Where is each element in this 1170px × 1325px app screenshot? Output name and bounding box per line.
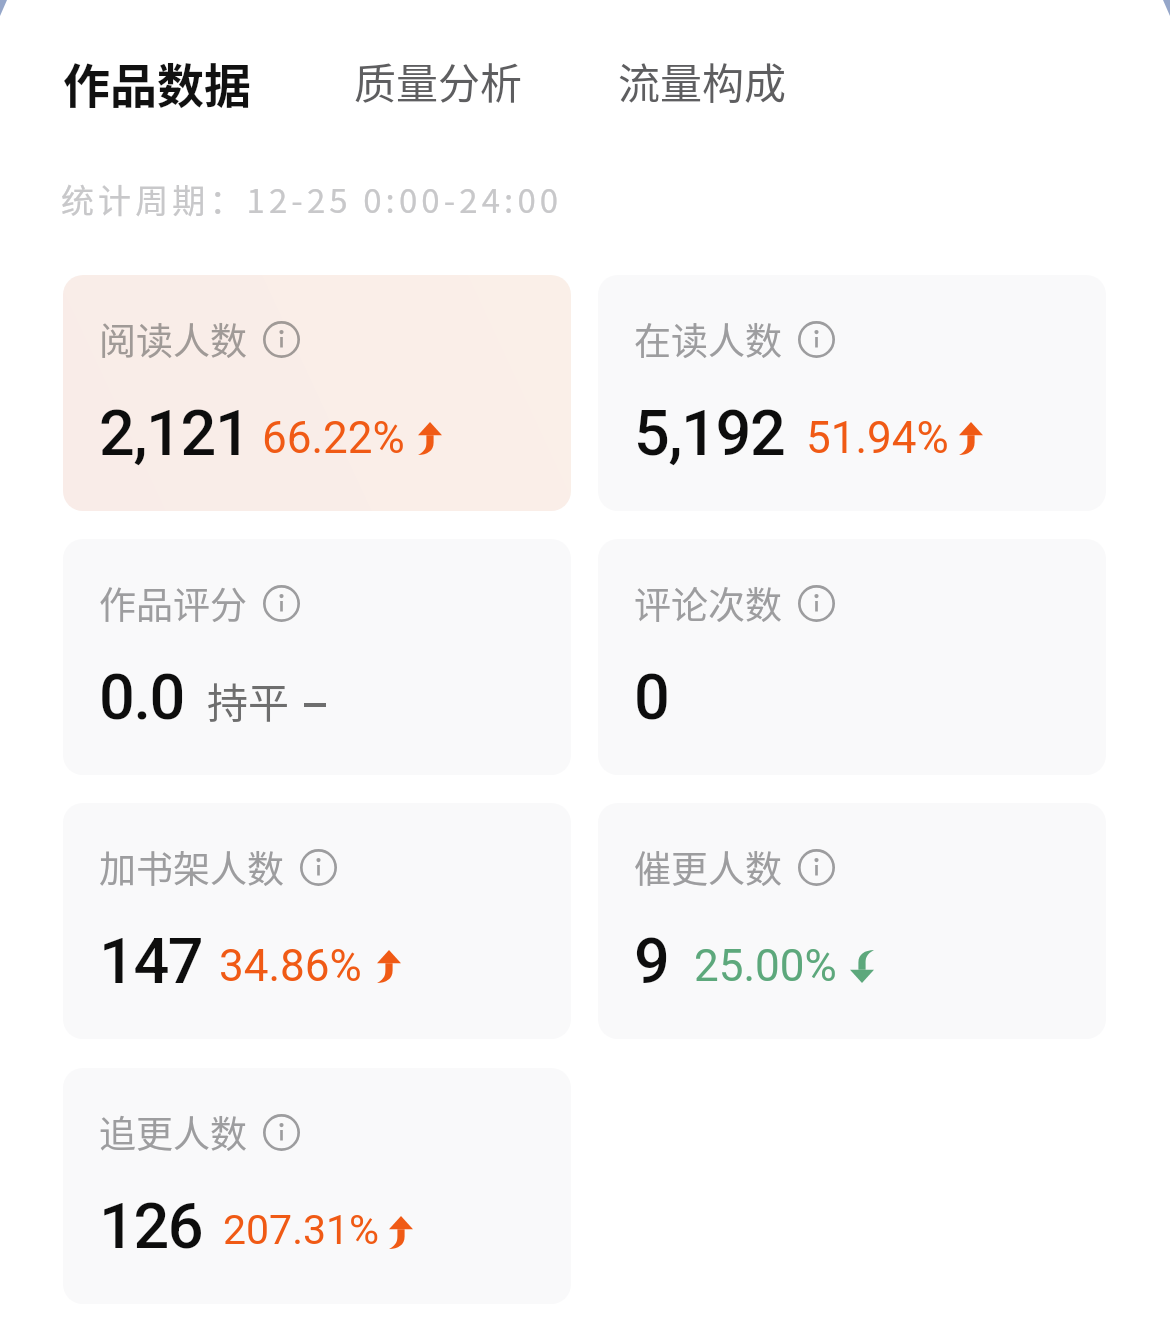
button[interactable]: 阅读人数 xyxy=(63,275,571,511)
button[interactable]: 作品数据 xyxy=(63,48,251,116)
staticText: 作品评分 xyxy=(99,576,247,630)
button[interactable]: 作品评分 xyxy=(63,539,571,775)
button[interactable]: 质量分析 xyxy=(354,50,523,111)
staticText: 加书架人数 xyxy=(99,840,284,894)
staticText: 66.22% xyxy=(262,412,405,464)
staticText: 流量构成 xyxy=(618,50,787,111)
button[interactable]: About 加书架人数 xyxy=(300,849,337,886)
staticText: 9 xyxy=(634,925,669,999)
staticText: 作品数据 xyxy=(63,48,251,116)
button[interactable]: 流量构成 xyxy=(618,50,787,111)
staticText: 147 xyxy=(99,925,203,999)
staticText: 质量分析 xyxy=(354,50,523,111)
staticText: 0.0 xyxy=(99,661,184,735)
button[interactable]: 追更人数 xyxy=(63,1068,571,1304)
staticText: 0 xyxy=(634,661,669,735)
button[interactable]: About 作品评分 xyxy=(263,585,300,622)
button[interactable]: About 阅读人数 xyxy=(263,321,300,358)
staticText: 评论次数 xyxy=(634,576,782,630)
button[interactable]: About 追更人数 xyxy=(263,1114,300,1151)
staticText: 51.94% xyxy=(806,412,949,464)
staticText: 在读人数 xyxy=(634,312,782,366)
button[interactable]: About 评论次数 xyxy=(798,585,835,622)
staticText: 催更人数 xyxy=(634,840,782,894)
button[interactable]: About 在读人数 xyxy=(798,321,835,358)
button[interactable]: 加书架人数 xyxy=(63,803,571,1039)
button[interactable]: 催更人数 xyxy=(598,803,1106,1039)
staticText: 阅读人数 xyxy=(99,312,247,366)
staticText: 持平 xyxy=(207,670,289,729)
staticText: 2,121 xyxy=(99,397,250,471)
button[interactable]: 在读人数 xyxy=(598,275,1106,511)
staticText: 追更人数 xyxy=(99,1105,247,1159)
staticText: 126 xyxy=(99,1190,203,1264)
staticText: 5,192 xyxy=(634,397,785,471)
staticText: 统计周期：12-25 0:00-24:00 xyxy=(61,175,563,223)
staticText: 207.31% xyxy=(223,1206,380,1254)
button[interactable]: About 催更人数 xyxy=(798,849,835,886)
button[interactable]: 评论次数 xyxy=(598,539,1106,775)
staticText: 25.00% xyxy=(694,940,837,992)
staticText: 34.86% xyxy=(219,940,362,992)
